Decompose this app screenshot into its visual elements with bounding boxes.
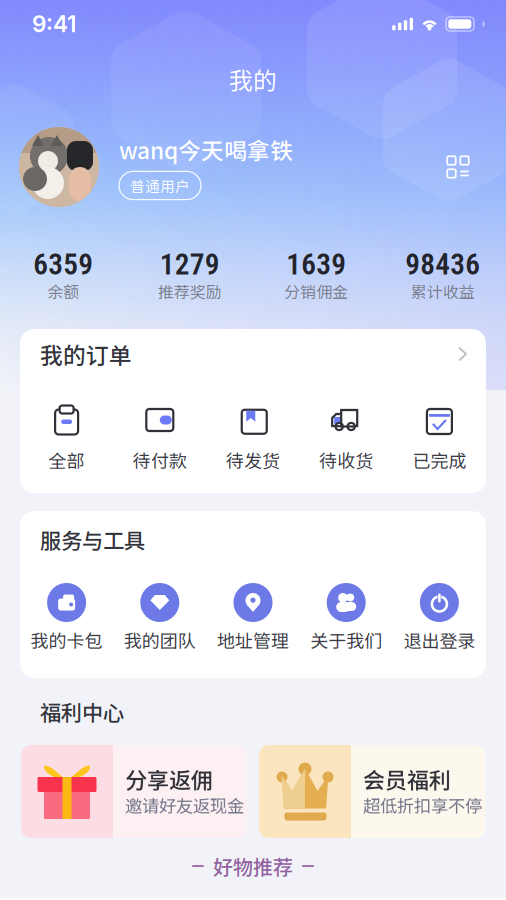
button[interactable]: 我的卡包 (20, 568, 113, 668)
staticText: 我的订单 (40, 338, 132, 370)
staticText: 分销佣金 (284, 279, 348, 303)
staticText: 退出登录 (403, 627, 475, 653)
staticText: 福利中心 (40, 696, 124, 727)
staticText: 待收货 (319, 447, 373, 473)
staticText: 地址管理 (217, 627, 289, 653)
staticText: 我的团队 (124, 627, 196, 653)
staticText: 6359 (33, 247, 93, 282)
staticText: 全部 (49, 447, 85, 473)
staticText: 待付款 (133, 447, 187, 473)
staticText: 1639 (286, 247, 346, 282)
staticText: 余额 (47, 279, 79, 303)
staticText: 我的 (229, 62, 277, 96)
staticText: 邀请好友返现金 (125, 792, 244, 818)
staticText: 我的卡包 (31, 627, 103, 653)
staticText: 关于我们 (310, 627, 382, 653)
staticText: 98436 (405, 247, 480, 282)
staticText: 1279 (160, 247, 220, 282)
staticText: 9:41 (32, 10, 76, 38)
button[interactable]: 关于我们 (300, 568, 393, 668)
staticText: 会员福利 (363, 763, 451, 795)
staticText: wanq今天喝拿铁 (119, 133, 293, 166)
staticText: 已完成 (412, 447, 466, 473)
button[interactable]: 待发货 (206, 379, 300, 479)
staticText: 推荐奖励 (158, 279, 222, 303)
staticText: 好物推荐 (213, 851, 293, 880)
staticText: 超低折扣享不停 (363, 792, 482, 818)
button[interactable]: 全部 (20, 379, 113, 479)
button[interactable]: 会员福利 (259, 745, 485, 838)
button[interactable]: 扫一扫 (436, 145, 480, 189)
staticText: 待发货 (226, 447, 280, 473)
staticText: 服务与工具 (40, 524, 145, 555)
button[interactable]: 退出登录 (393, 568, 486, 668)
button[interactable]: 地址管理 (206, 568, 300, 668)
staticText: 累计收益 (411, 279, 475, 303)
button[interactable]: 分享返佣 (21, 745, 247, 838)
button[interactable]: 我的订单 (20, 329, 486, 379)
button[interactable]: 已完成 (393, 379, 486, 479)
staticText: 分享返佣 (125, 763, 213, 795)
button[interactable]: 我的团队 (113, 568, 206, 668)
staticText: 普通用户 (130, 175, 190, 196)
button[interactable]: 待收货 (300, 379, 393, 479)
button[interactable]: 待付款 (113, 379, 206, 479)
